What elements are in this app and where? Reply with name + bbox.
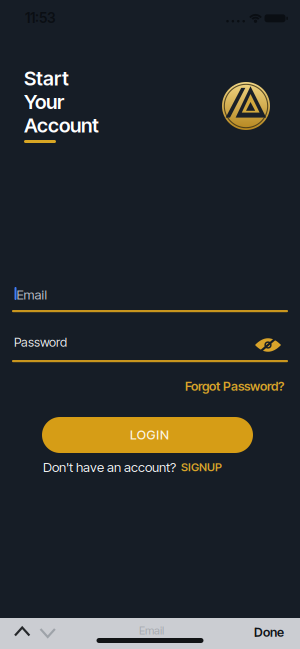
button[interactable]: Password <box>12 333 288 363</box>
staticText: Password <box>14 334 67 350</box>
button[interactable]: SIGNUP <box>181 460 222 474</box>
staticText: Done <box>254 624 284 640</box>
staticText: Your <box>24 89 64 114</box>
staticText: SIGNUP <box>181 460 222 474</box>
staticText: Forgot Password? <box>185 378 284 394</box>
button[interactable]: Email <box>12 286 288 313</box>
staticText: Account <box>24 113 99 137</box>
staticText: Don't have an account? <box>43 459 176 475</box>
button[interactable] <box>255 337 281 354</box>
button[interactable]: Done <box>254 624 284 640</box>
staticText: 11:53 <box>25 9 56 26</box>
button[interactable]: Forgot Password? <box>185 378 284 394</box>
staticText: Start <box>24 66 69 90</box>
staticText: Email <box>16 286 47 303</box>
button[interactable] <box>40 629 55 638</box>
button[interactable] <box>15 627 30 636</box>
staticText: LOGIN <box>130 427 169 443</box>
button[interactable]: LOGIN <box>42 417 253 453</box>
staticText: Email <box>139 623 164 637</box>
